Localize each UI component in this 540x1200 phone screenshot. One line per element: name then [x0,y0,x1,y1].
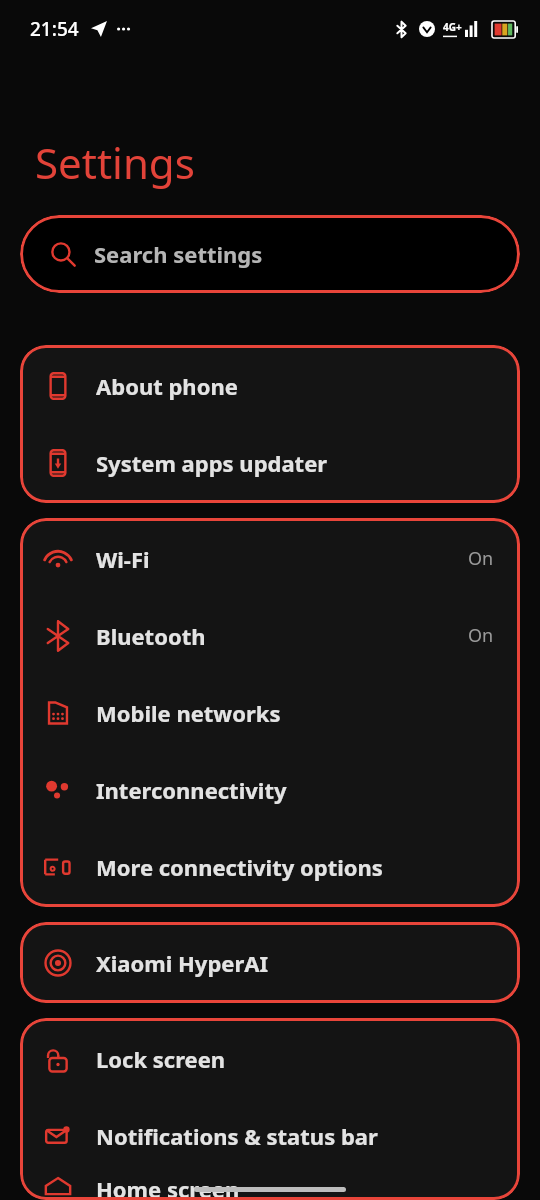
button[interactable]: More connectivity options [20,828,520,905]
button[interactable]: Xiaomi HyperAI [20,924,520,1001]
button[interactable]: Interconnectivity [20,751,520,828]
staticText: Interconnectivity [96,775,287,805]
staticText: Settings [35,134,195,191]
staticText: Bluetooth [96,621,206,651]
button[interactable]: Home screen [20,1174,520,1198]
staticText: Mobile networks [96,698,281,728]
staticText: Search settings [94,239,263,269]
staticText: Wi-Fi [96,544,150,574]
button[interactable]: Wi-Fi [20,520,520,597]
button[interactable]: Mobile networks [20,674,520,751]
staticText: 21:54 [30,16,79,42]
staticText: Home screen [96,1174,240,1198]
staticText: About phone [96,371,238,401]
staticText: On [468,546,494,571]
button[interactable]: About phone [20,347,520,424]
staticText: On [468,623,494,648]
staticText: Xiaomi HyperAI [96,948,269,978]
button[interactable]: Notifications & status bar [20,1097,520,1174]
staticText: More connectivity options [96,852,383,882]
staticText: Notifications & status bar [96,1121,378,1151]
button[interactable]: Bluetooth [20,597,520,674]
button[interactable]: Lock screen [20,1020,520,1097]
staticText: 4G+ [443,20,462,34]
button[interactable]: Search settings [20,215,520,293]
staticText: Lock screen [96,1044,226,1074]
staticText: System apps updater [96,448,328,478]
button[interactable]: System apps updater [20,424,520,501]
